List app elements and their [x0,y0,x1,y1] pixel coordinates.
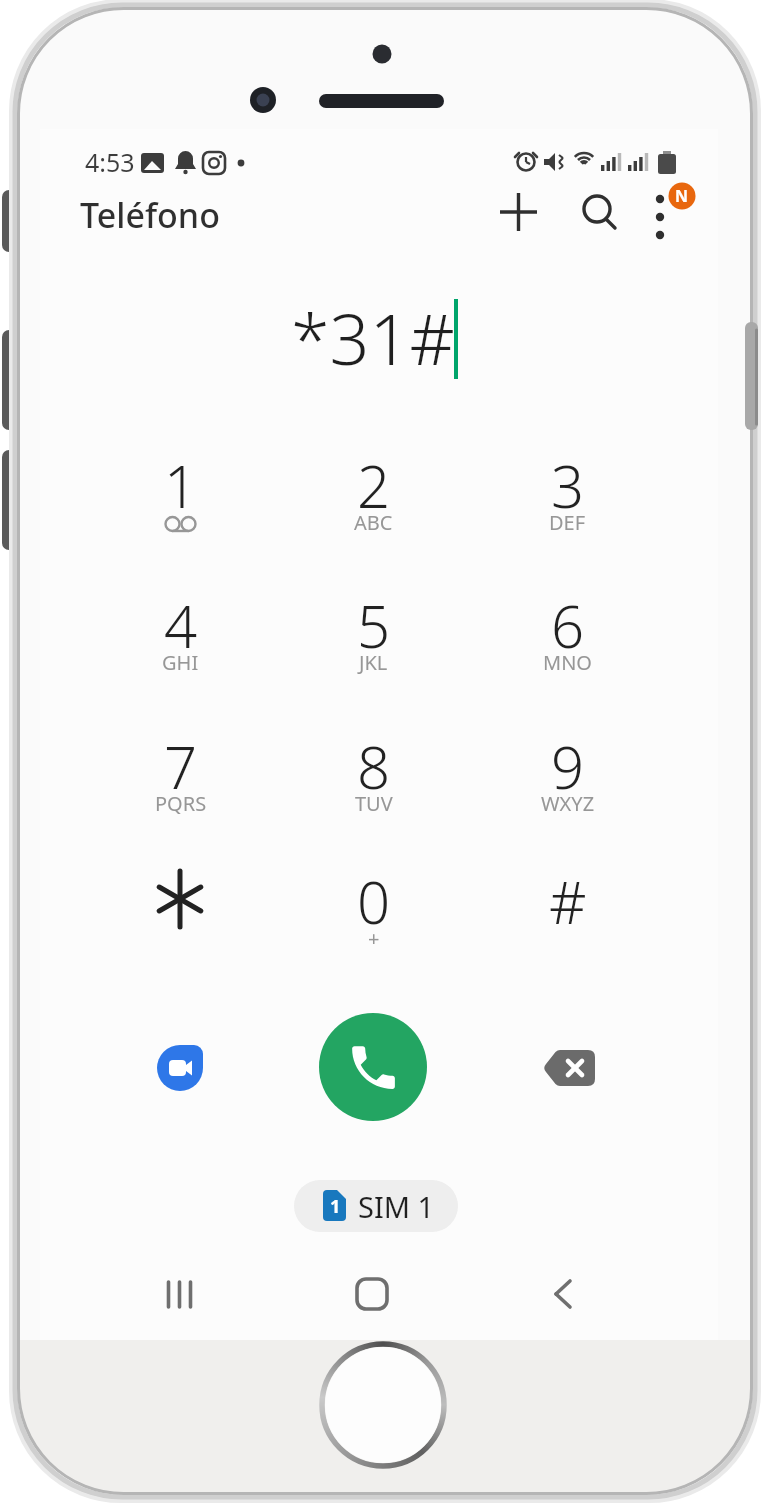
staticText: 4 [164,586,198,665]
button[interactable]: 8 [277,715,470,817]
staticText: *31# [291,290,455,385]
staticText: MNO [543,649,592,676]
button[interactable] [319,1013,427,1121]
button[interactable] [157,1045,203,1091]
staticText: 2 [357,446,391,525]
button[interactable] [635,187,685,237]
button[interactable]: 1 [294,1180,458,1232]
staticText: 6 [551,586,585,665]
staticText: 3 [551,446,585,525]
staticText: 1 [164,446,198,525]
staticText: SIM 1 [358,1187,435,1226]
staticText: N [675,185,689,207]
button[interactable]: 5 [277,574,470,676]
button[interactable]: 9 [471,715,664,817]
button[interactable] [84,850,277,952]
staticText: TUV [355,790,393,817]
button[interactable]: 3 [471,434,664,536]
button[interactable]: 7 [84,715,277,817]
staticText: 0 [357,862,391,941]
staticText: 8 [357,727,391,806]
button[interactable] [572,187,622,237]
button[interactable]: 4 [84,574,277,676]
button[interactable] [494,187,544,237]
staticText: PQRS [155,790,207,817]
staticText: WXYZ [541,790,595,817]
button[interactable]: 6 [471,574,664,676]
button[interactable]: # [471,850,664,952]
button[interactable]: 1 [84,434,277,536]
button[interactable] [544,1050,595,1086]
button[interactable]: Teléfono [80,192,220,236]
staticText: GHI [162,649,199,676]
staticText: 7 [164,727,198,806]
staticText: + [368,925,380,952]
staticText: 5 [357,586,391,665]
staticText: JKL [359,649,388,676]
staticText: 1 [330,1194,341,1218]
staticText: DEF [549,509,586,536]
button[interactable] [332,1260,412,1328]
button[interactable]: 2 [277,434,470,536]
staticText: 4:53 [85,145,135,179]
staticText: ABC [354,509,393,536]
staticText: Teléfono [80,192,220,236]
button[interactable] [522,1260,602,1328]
button[interactable]: 0 [277,850,470,952]
staticText: 9 [551,727,585,806]
staticText: # [549,862,587,941]
button[interactable] [140,1260,220,1328]
